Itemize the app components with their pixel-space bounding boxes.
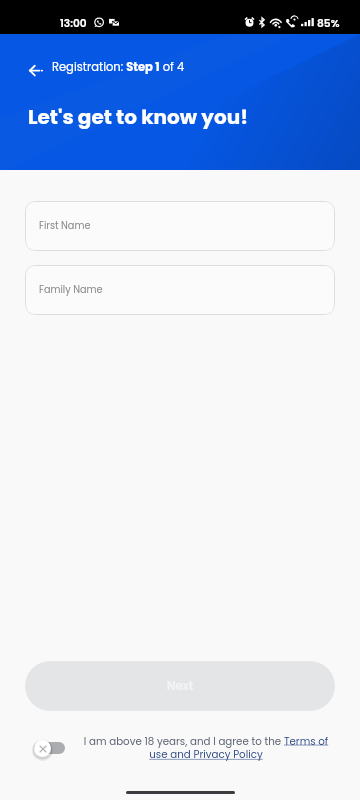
button[interactable]: Back: [24, 57, 46, 83]
staticText: Next: [167, 678, 194, 694]
staticText: Family Name: [39, 283, 103, 297]
staticText: Let's get to know you!: [28, 103, 248, 131]
staticText: 13:00: [60, 16, 87, 31]
staticText: Registration: Step 1 of 4: [52, 59, 185, 75]
button[interactable]: Agree to terms toggle: [34, 739, 65, 757]
staticText: First Name: [39, 219, 91, 233]
button[interactable]: Family Name: [25, 265, 335, 315]
button[interactable]: Next: [25, 661, 335, 711]
staticText: I am above 18 years, and I agree to the …: [82, 734, 330, 762]
staticText: 85%: [317, 16, 340, 31]
button[interactable]: First Name: [25, 201, 335, 251]
